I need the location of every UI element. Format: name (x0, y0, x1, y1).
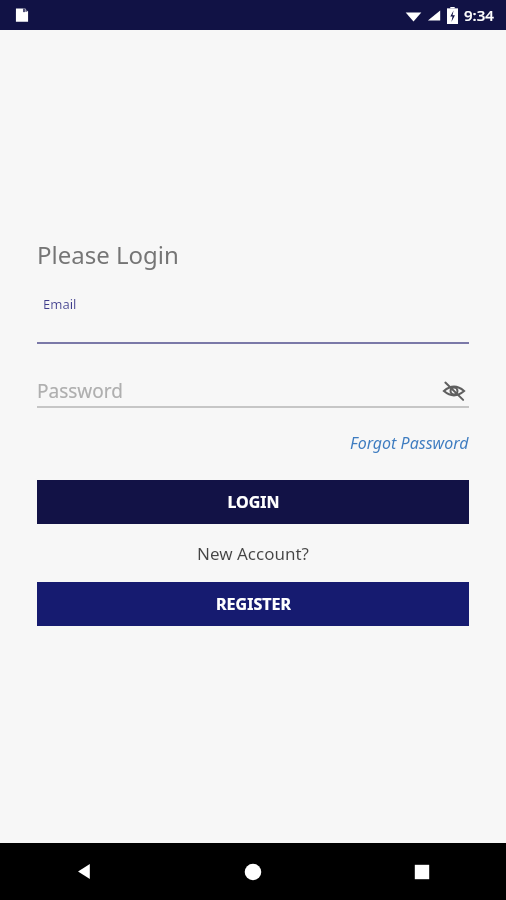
button[interactable]: LOGIN (37, 480, 469, 524)
staticText: LOGIN (227, 491, 280, 513)
staticText: Please Login (37, 238, 179, 271)
staticText: New Account? (197, 542, 309, 565)
staticText: REGISTER (216, 593, 291, 615)
button[interactable]: Show password (439, 376, 469, 406)
button[interactable]: Email (0, 295, 506, 344)
button[interactable]: Password (0, 376, 506, 406)
staticText: Email (43, 295, 77, 313)
staticText: 9:34 (464, 5, 494, 25)
button[interactable]: Forgot Password (313, 428, 506, 458)
staticText: Forgot Password (350, 432, 469, 454)
button[interactable]: Recent apps (337, 843, 506, 900)
button[interactable]: Back (0, 843, 168, 900)
button[interactable]: REGISTER (37, 582, 469, 626)
button[interactable]: Home (168, 843, 337, 900)
staticText: Password (37, 378, 439, 404)
